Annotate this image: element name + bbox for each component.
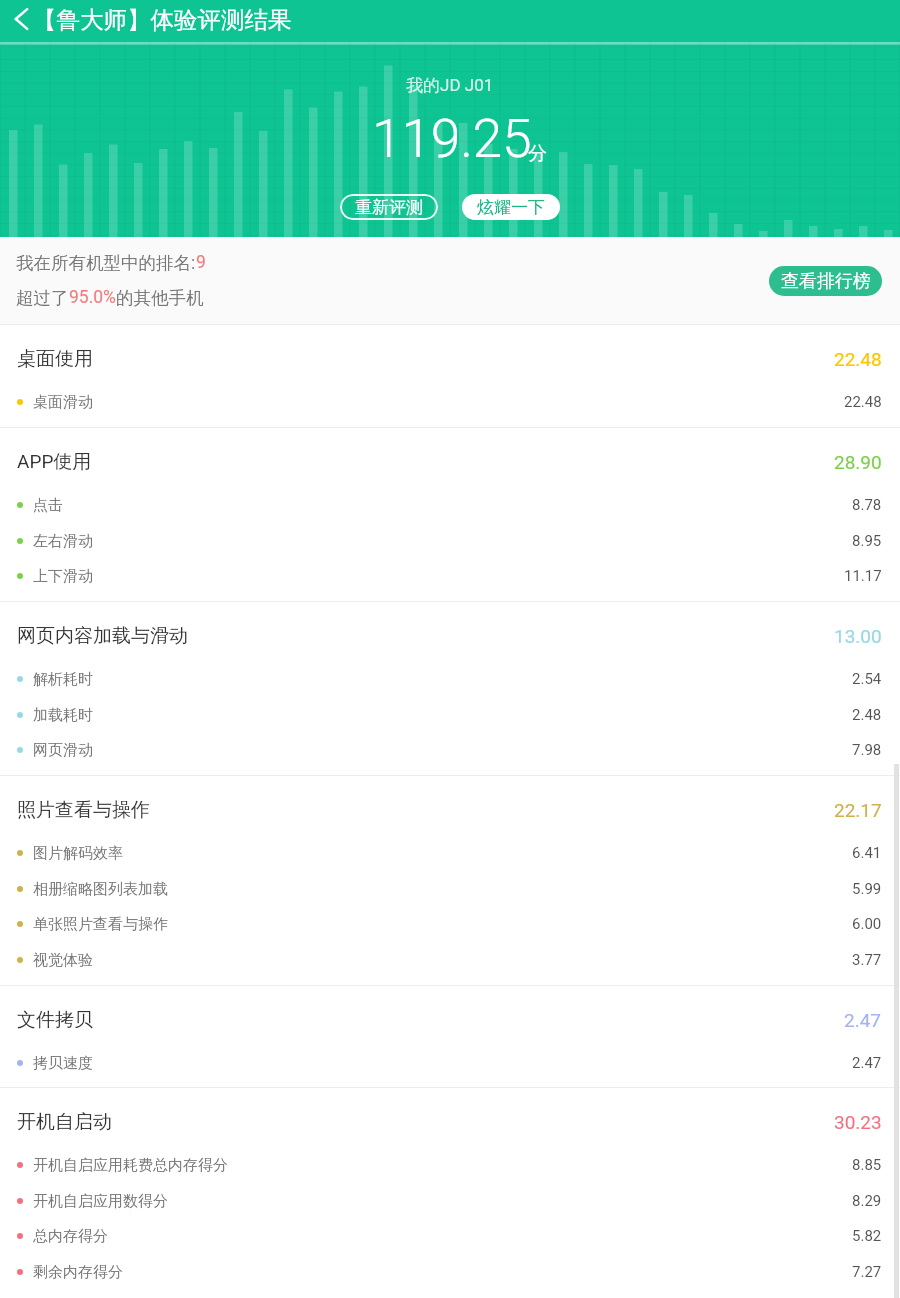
staticText: 2.47 (844, 1009, 882, 1031)
staticText: 网页滑动 (33, 741, 93, 760)
button[interactable]: 视觉体验 (0, 942, 900, 978)
button[interactable]: 图片解码效率 (0, 835, 900, 871)
staticText: 95.0% (69, 287, 116, 308)
button[interactable]: APP使用 (0, 428, 900, 486)
staticText: 总内存得分 (33, 1227, 108, 1246)
staticText: 拷贝速度 (33, 1054, 93, 1073)
staticText: 分 (528, 142, 547, 166)
staticText: 左右滑动 (33, 532, 93, 551)
button[interactable]: 左右滑动 (0, 523, 900, 559)
staticText: 7.27 (852, 1263, 882, 1281)
button[interactable]: 拷贝速度 (0, 1045, 900, 1081)
staticText: 桌面使用 (17, 347, 93, 371)
staticText: 8.78 (852, 496, 882, 514)
staticText: 视觉体验 (33, 951, 93, 970)
button[interactable]: 重新评测 (340, 194, 438, 220)
staticText: 9 (196, 252, 206, 273)
staticText: 30.23 (834, 1111, 882, 1133)
staticText: 22.17 (834, 799, 882, 821)
staticText: 5.99 (852, 880, 882, 898)
staticText: 解析耗时 (33, 670, 93, 689)
staticText: 【鲁大师】体验评测结果 (33, 5, 292, 35)
button[interactable]: 开机自启动 (0, 1088, 900, 1146)
staticText: 7.98 (852, 741, 882, 759)
staticText: 8.85 (852, 1156, 882, 1174)
staticText: 我的JD J01 (406, 75, 494, 96)
staticText: 上下滑动 (33, 567, 93, 586)
staticText: 8.29 (852, 1192, 882, 1210)
staticText: 炫耀一下 (477, 197, 545, 218)
staticText: 6.00 (852, 915, 882, 933)
staticText: 2.54 (852, 670, 882, 688)
staticText: 13.00 (834, 625, 882, 647)
button[interactable]: 网页滑动 (0, 732, 900, 768)
staticText: 相册缩略图列表加载 (33, 880, 168, 899)
staticText: 5.82 (852, 1227, 882, 1245)
button[interactable]: 上下滑动 (0, 558, 900, 594)
staticText: 2.48 (852, 706, 882, 724)
button[interactable]: 剩余内存得分 (0, 1254, 900, 1290)
staticText: 开机自启应用数得分 (33, 1192, 168, 1211)
staticText: 点击 (33, 496, 63, 515)
staticText: 加载耗时 (33, 706, 93, 725)
staticText: 6.41 (852, 844, 882, 862)
staticText: APP使用 (17, 450, 92, 474)
staticText: 的其他手机 (116, 287, 204, 309)
staticText: 图片解码效率 (33, 844, 123, 863)
staticText: 22.48 (834, 348, 882, 370)
button[interactable]: 相册缩略图列表加载 (0, 871, 900, 907)
button[interactable]: 网页内容加载与滑动 (0, 602, 900, 660)
staticText: 照片查看与操作 (17, 798, 150, 822)
button[interactable]: 炫耀一下 (462, 194, 560, 220)
staticText: 8.95 (852, 532, 882, 550)
button[interactable]: Back (0, 0, 44, 42)
staticText: 开机自启动 (17, 1110, 112, 1134)
staticText: 查看排行榜 (781, 270, 871, 293)
button[interactable]: 查看排行榜 (769, 266, 882, 296)
staticText: 剩余内存得分 (33, 1263, 123, 1282)
staticText: 2.47 (852, 1054, 882, 1072)
staticText: 网页内容加载与滑动 (17, 624, 188, 648)
button[interactable]: 点击 (0, 487, 900, 523)
button[interactable]: 照片查看与操作 (0, 776, 900, 834)
staticText: 超过了 (16, 287, 69, 309)
button[interactable]: 桌面使用 (0, 325, 900, 383)
button[interactable]: 开机自启应用数得分 (0, 1183, 900, 1219)
button[interactable]: 总内存得分 (0, 1218, 900, 1254)
button[interactable]: 单张照片查看与操作 (0, 906, 900, 942)
button[interactable]: 桌面滑动 (0, 384, 900, 420)
button[interactable]: 加载耗时 (0, 697, 900, 733)
button[interactable]: 文件拷贝 (0, 986, 900, 1044)
button[interactable]: 解析耗时 (0, 661, 900, 697)
staticText: 22.48 (844, 393, 882, 411)
staticText: 桌面滑动 (33, 393, 93, 412)
staticText: 重新评测 (355, 197, 423, 218)
staticText: 开机自启应用耗费总内存得分 (33, 1156, 228, 1175)
staticText: 28.90 (834, 451, 882, 473)
staticText: 文件拷贝 (17, 1008, 93, 1032)
staticText: 单张照片查看与操作 (33, 915, 168, 934)
button[interactable]: 开机自启应用耗费总内存得分 (0, 1147, 900, 1183)
staticText: 119.25 (372, 107, 532, 170)
staticText: 11.17 (844, 567, 882, 585)
staticText: 3.77 (852, 951, 882, 969)
staticText: 我在所有机型中的排名: (16, 252, 196, 274)
